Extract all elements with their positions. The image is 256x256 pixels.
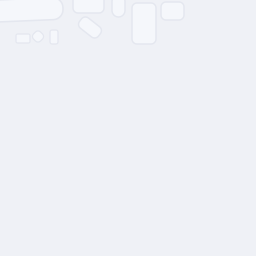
button[interactable]: Card: [0, 0, 24, 41]
button[interactable]: Card: [0, 0, 84, 22]
button[interactable]: Capsule: [0, 0, 13, 22]
